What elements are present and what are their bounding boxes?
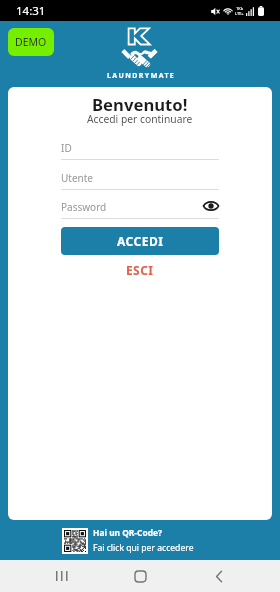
button[interactable]: DEMO <box>8 28 54 56</box>
button[interactable]: Hai un QR-Code? <box>62 527 240 554</box>
staticText: Hai un QR-Code? <box>93 527 162 538</box>
button[interactable]: Back <box>202 560 236 592</box>
staticText: ACCEDI <box>117 233 164 249</box>
button[interactable]: ID <box>61 140 219 160</box>
staticText: Benvenuto! <box>92 93 188 116</box>
staticText: LTE+ <box>235 11 244 16</box>
staticText: Fai click qui per accedere <box>93 542 194 554</box>
button[interactable]: Utente <box>61 170 219 190</box>
staticText: 1Kb <box>236 6 244 11</box>
button[interactable]: Home <box>123 560 157 592</box>
staticText: Password <box>61 200 107 214</box>
button[interactable]: ESCI <box>122 258 158 282</box>
staticText: ESCI <box>126 262 154 278</box>
staticText: Accedi per continuare <box>87 112 193 126</box>
staticText: ID <box>61 141 72 155</box>
staticText: LAUNDRYMATE <box>107 71 176 81</box>
button[interactable]: Password <box>61 199 219 219</box>
button[interactable]: ACCEDI <box>61 227 219 255</box>
button[interactable]: Show password <box>203 199 219 212</box>
button[interactable]: Recent apps <box>45 560 79 592</box>
staticText: 14:31 <box>16 3 46 19</box>
staticText: Utente <box>61 171 93 185</box>
staticText: DEMO <box>15 35 47 49</box>
